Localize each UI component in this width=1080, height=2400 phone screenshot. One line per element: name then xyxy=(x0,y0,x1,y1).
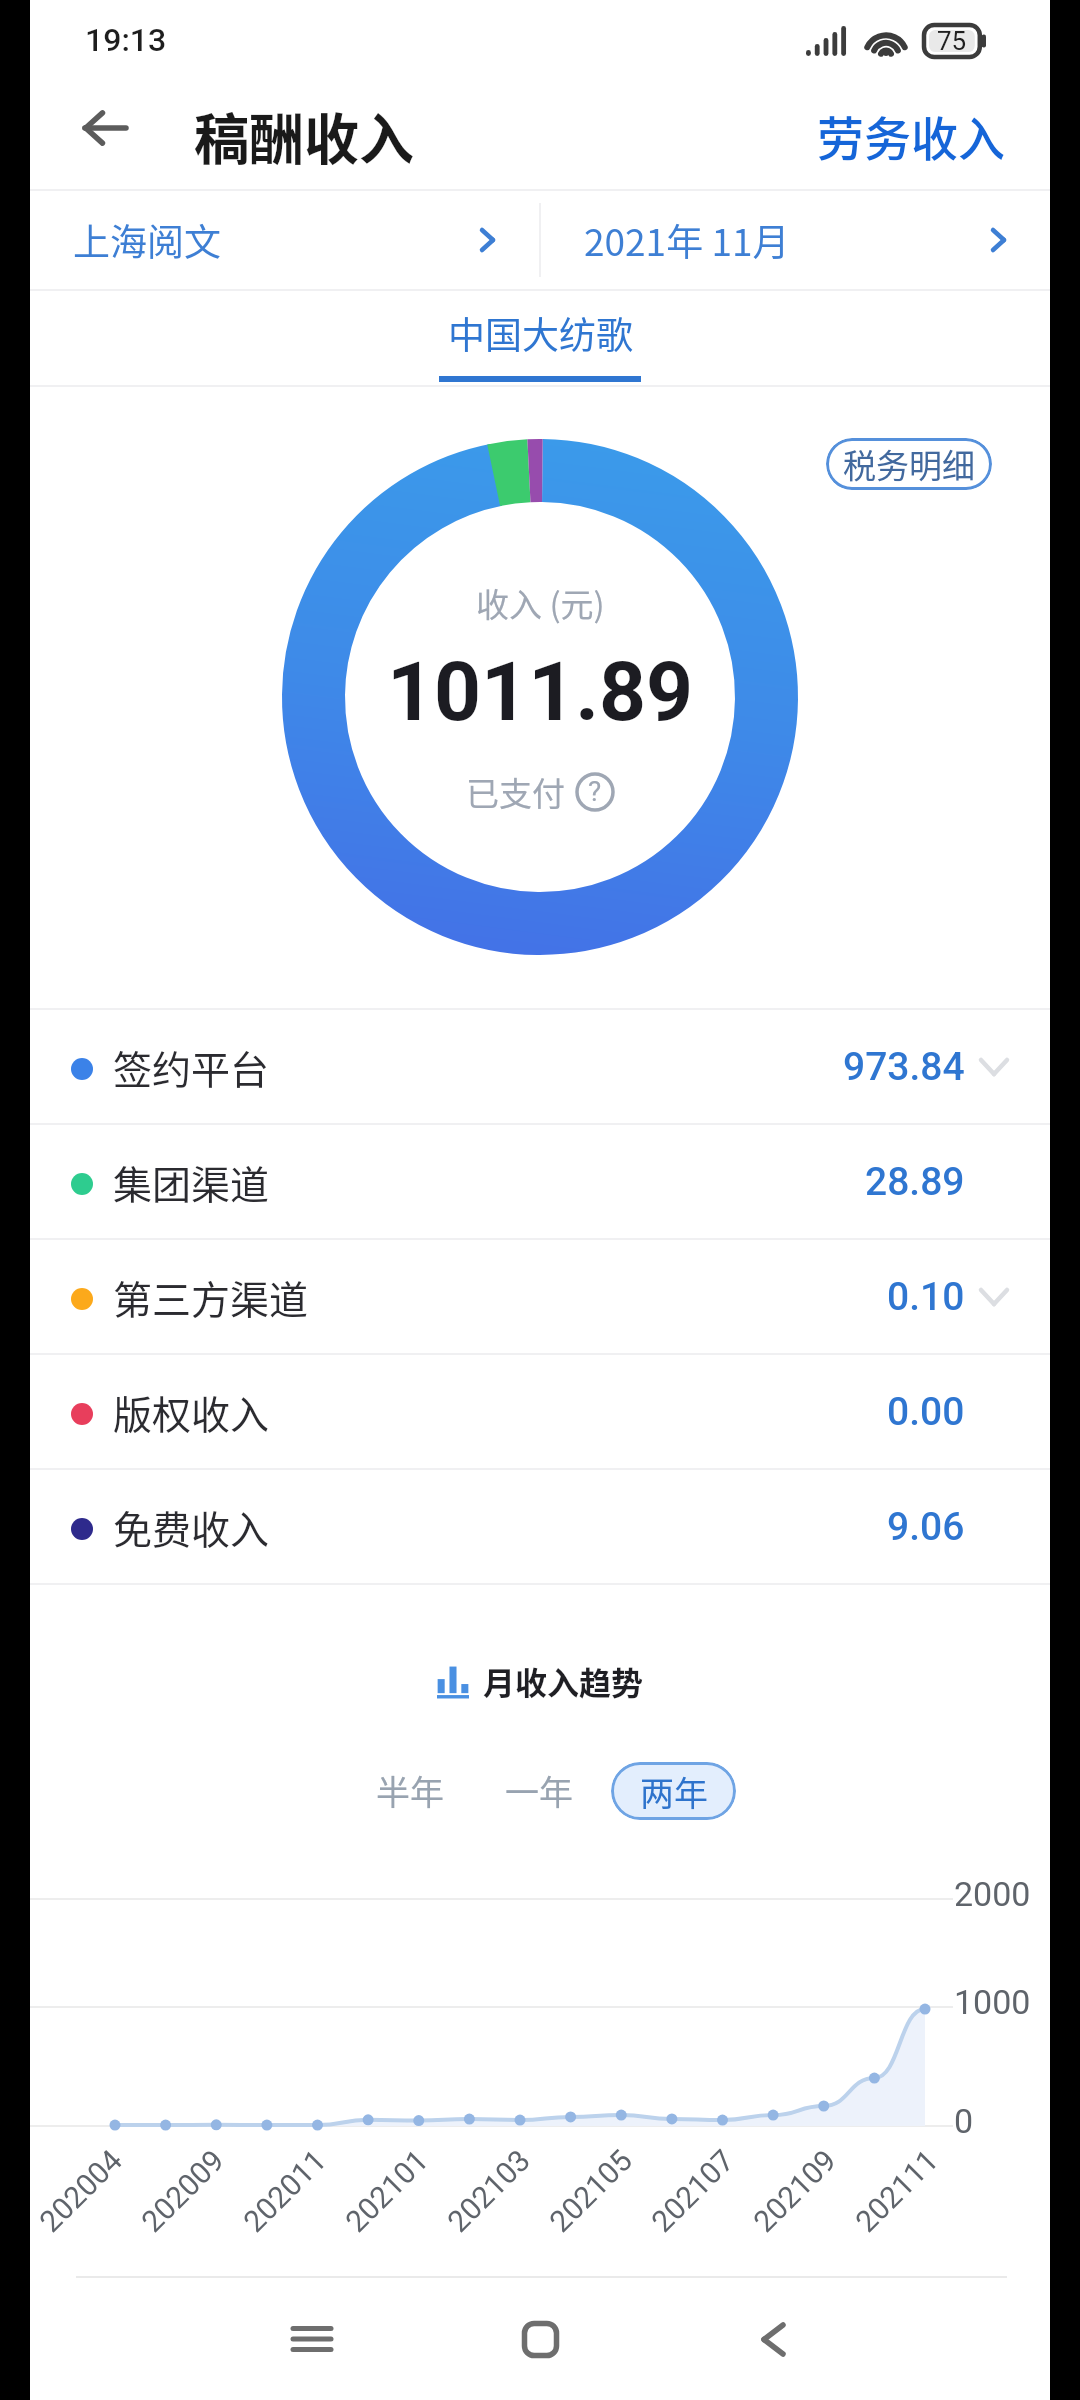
staticText: 19:13 xyxy=(85,21,167,59)
staticText: 2000 xyxy=(954,1874,1031,1914)
staticText: 202011 xyxy=(237,2142,333,2239)
staticText: 0.00 xyxy=(887,1389,965,1435)
staticText: 版权收入 xyxy=(113,1384,270,1440)
staticText: 202111 xyxy=(849,2142,945,2239)
staticText: 2021年 11月 xyxy=(584,213,790,267)
staticText: 1011.89 xyxy=(387,644,694,740)
staticText: 202101 xyxy=(339,2142,435,2239)
button[interactable]: 劳务收入 xyxy=(803,89,1019,181)
button[interactable]: Back xyxy=(62,85,148,171)
staticText: 0.10 xyxy=(887,1274,965,1320)
staticText: 税务明细 xyxy=(843,440,975,488)
button[interactable]: Recents xyxy=(232,2278,392,2400)
staticText: 第三方渠道 xyxy=(113,1269,309,1325)
staticText: 202105 xyxy=(543,2142,639,2239)
staticText: 75 xyxy=(937,26,967,56)
button[interactable]: 一年 xyxy=(485,1750,593,1831)
button[interactable]: 签约平台 xyxy=(30,1010,1050,1123)
staticText: 973.84 xyxy=(843,1044,965,1090)
staticText: 202009 xyxy=(135,2142,231,2239)
staticText: 签约平台 xyxy=(113,1039,270,1095)
button[interactable]: 两年 xyxy=(611,1762,736,1820)
button[interactable]: 集团渠道 xyxy=(30,1125,1050,1238)
button[interactable]: 税务明细 xyxy=(826,438,992,490)
staticText: 免费收入 xyxy=(113,1499,270,1555)
staticText: 上海阅文 xyxy=(73,213,221,267)
staticText: 半年 xyxy=(376,1766,444,1815)
staticText: 0 xyxy=(954,2101,974,2141)
staticText: ? xyxy=(588,775,602,808)
button[interactable]: 版权收入 xyxy=(30,1355,1050,1468)
button[interactable]: 第三方渠道 xyxy=(30,1240,1050,1353)
button[interactable]: 中国大纺歌 xyxy=(439,291,641,382)
staticText: 收入 (元) xyxy=(476,579,605,627)
staticText: 已支付 xyxy=(466,768,565,816)
staticText: 月收入趋势 xyxy=(483,1658,644,1704)
button[interactable]: 上海阅文 xyxy=(30,191,539,289)
staticText: 202109 xyxy=(747,2142,843,2239)
staticText: 1000 xyxy=(954,1982,1031,2022)
staticText: 中国大纺歌 xyxy=(448,306,633,360)
button[interactable]: Back xyxy=(693,2278,853,2400)
staticText: 一年 xyxy=(505,1766,573,1815)
staticText: 集团渠道 xyxy=(113,1154,270,1210)
button[interactable]: 半年 xyxy=(344,1750,464,1831)
button[interactable]: 免费收入 xyxy=(30,1470,1050,1583)
staticText: 202004 xyxy=(33,2142,129,2239)
staticText: 202107 xyxy=(645,2142,741,2239)
staticText: 28.89 xyxy=(865,1159,965,1205)
staticText: 9.06 xyxy=(887,1504,965,1550)
staticText: 两年 xyxy=(640,1767,708,1816)
staticText: 劳务收入 xyxy=(817,101,1005,169)
button[interactable]: 2021年 11月 xyxy=(541,191,1050,289)
staticText: 稿酬收入 xyxy=(194,95,415,175)
button[interactable]: Home xyxy=(460,2278,620,2400)
staticText: 202103 xyxy=(441,2142,537,2239)
